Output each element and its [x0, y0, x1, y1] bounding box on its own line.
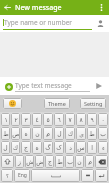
staticText: ه — [24, 130, 28, 137]
button[interactable]: ء — [98, 141, 108, 154]
staticText: م — [88, 158, 92, 165]
button[interactable]: م — [85, 155, 94, 168]
button[interactable]: ٠ — [98, 113, 108, 126]
staticText: ك — [68, 130, 73, 137]
button[interactable]: More options — [94, 0, 109, 15]
staticText: Type text message — [15, 81, 72, 90]
staticText: ء — [102, 144, 105, 151]
staticText: ٧ — [68, 116, 72, 123]
staticText: ٥ — [46, 116, 50, 123]
staticText: ن — [35, 130, 40, 137]
button[interactable]: ط — [1, 127, 10, 140]
button[interactable]: ٢ — [11, 113, 20, 126]
staticText: ج — [48, 158, 52, 165]
staticText: ٩ — [90, 116, 94, 123]
button[interactable]: ص — [11, 127, 20, 140]
button[interactable]: ٣ — [21, 113, 31, 126]
staticText: Type name or number — [4, 18, 73, 27]
staticText: ل — [3, 144, 8, 151]
staticText: ٢ — [14, 116, 18, 123]
button[interactable]: د — [65, 141, 75, 154]
button[interactable]: Send — [92, 79, 106, 93]
button[interactable]: ب — [65, 155, 74, 168]
button[interactable]: ن — [32, 127, 42, 140]
button[interactable]: Space — [31, 169, 80, 182]
staticText: ٤ — [35, 116, 39, 123]
button[interactable]: س — [76, 141, 86, 154]
staticText: ک — [56, 144, 62, 151]
staticText: ض — [36, 158, 44, 165]
staticText: ل — [57, 130, 62, 137]
button[interactable]: ١ — [1, 113, 10, 126]
button[interactable]: ك — [11, 141, 20, 154]
button[interactable]: Type text message — [15, 81, 90, 92]
staticText: ج — [24, 144, 28, 151]
staticText: ط — [57, 158, 63, 165]
staticText: ك — [13, 144, 18, 151]
button[interactable]: Add attachment — [3, 81, 14, 92]
button[interactable]: Type name or number — [3, 18, 92, 30]
staticText: ه — [35, 144, 39, 151]
staticText: ٠ — [101, 116, 105, 123]
button[interactable]: Shift — [1, 155, 14, 168]
button[interactable]: ج — [45, 155, 54, 168]
staticText: ي — [79, 130, 84, 137]
staticText: ط — [3, 130, 9, 137]
button[interactable] — [3, 98, 22, 109]
staticText: ز — [18, 158, 21, 165]
staticText: Setting — [84, 100, 103, 107]
button[interactable]: Backspace — [95, 155, 108, 168]
button[interactable]: ي — [76, 127, 86, 140]
button[interactable]: ل — [54, 127, 64, 140]
button[interactable]: ه — [32, 141, 42, 154]
staticText: Eng — [18, 172, 27, 179]
staticText: س — [77, 144, 85, 151]
staticText: ط — [89, 130, 95, 137]
staticText: ا — [91, 144, 93, 151]
button[interactable]: ٤ — [32, 113, 42, 126]
button[interactable]: ش — [25, 155, 34, 168]
staticText: ٨ — [79, 116, 83, 123]
button[interactable]: ط — [55, 155, 64, 168]
staticText: ؟ — [6, 173, 9, 179]
button[interactable]: ٨ — [76, 113, 86, 126]
staticText: ١ — [4, 116, 8, 123]
staticText: ش — [26, 158, 34, 165]
staticText: د — [69, 144, 72, 151]
button[interactable]: Add recipient from contacts — [94, 17, 107, 30]
button[interactable]: ک — [54, 141, 64, 154]
button[interactable]: ن — [75, 155, 84, 168]
staticText: Theme — [48, 100, 66, 107]
staticText: ب — [100, 130, 106, 137]
button[interactable]: ط — [87, 127, 97, 140]
staticText: ب — [67, 158, 73, 165]
button[interactable]: ٦ — [54, 113, 64, 126]
button[interactable]: Back — [0, 0, 15, 15]
button[interactable]: ض — [35, 155, 44, 168]
button[interactable]: Settings — [81, 169, 94, 182]
button[interactable]: م — [43, 127, 53, 140]
button[interactable]: گ — [43, 141, 53, 154]
staticText: New message — [15, 3, 62, 13]
button[interactable]: ك — [65, 127, 75, 140]
staticText: ص — [12, 130, 20, 137]
staticText: ن — [77, 158, 82, 165]
staticText: گ — [45, 144, 51, 151]
button[interactable]: ه — [21, 127, 31, 140]
button[interactable]: ٩ — [87, 113, 97, 126]
button[interactable]: ل — [1, 141, 10, 154]
button[interactable]: Setting — [80, 98, 106, 109]
button[interactable]: Enter — [95, 169, 108, 182]
button[interactable]: Eng — [14, 169, 30, 182]
button[interactable]: ا — [87, 141, 97, 154]
staticText: م — [46, 130, 50, 137]
button[interactable]: ٥ — [43, 113, 53, 126]
button[interactable]: Theme — [44, 98, 70, 109]
staticText: ٣ — [24, 116, 28, 123]
button[interactable]: ؟ — [1, 169, 13, 182]
button[interactable]: ٧ — [65, 113, 75, 126]
staticText: ٦ — [57, 116, 61, 123]
button[interactable]: ب — [98, 127, 108, 140]
button[interactable]: ز — [15, 155, 24, 168]
button[interactable]: ج — [21, 141, 31, 154]
